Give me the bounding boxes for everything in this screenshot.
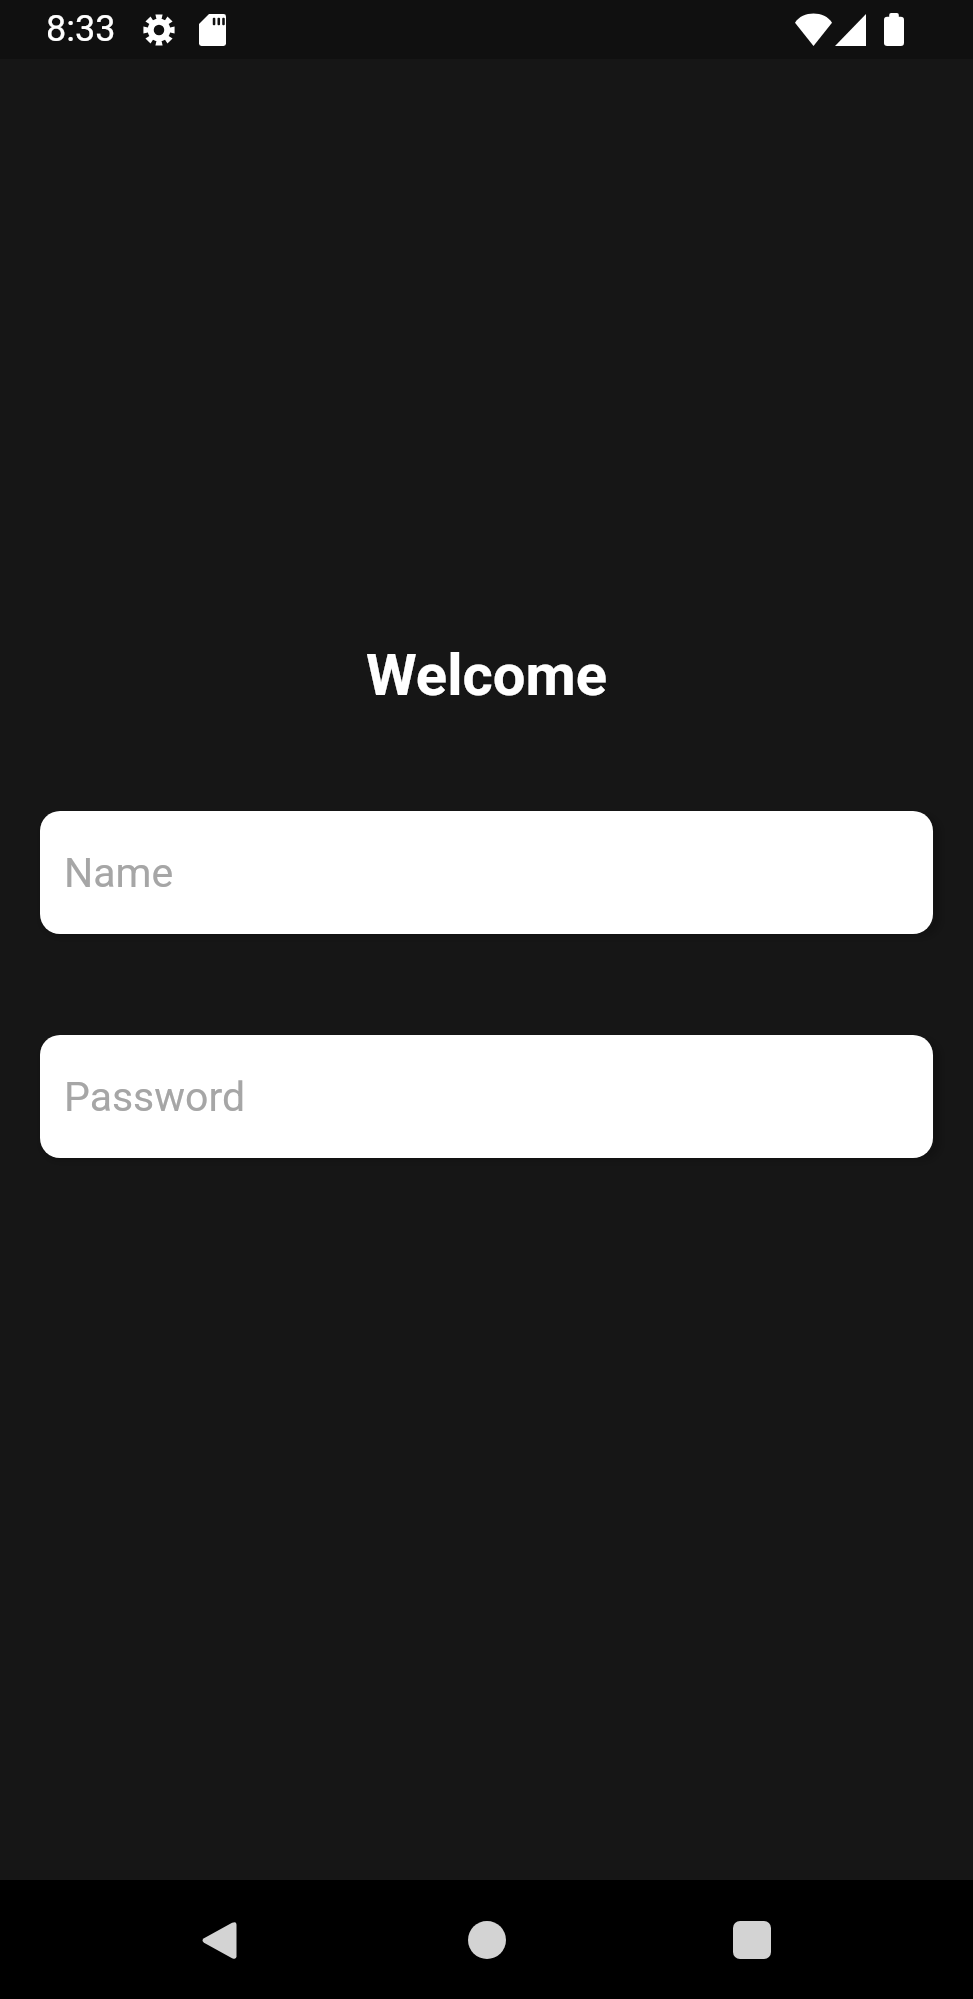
- button[interactable]: Name: [40, 811, 933, 934]
- staticText: Password: [64, 1073, 246, 1121]
- button[interactable]: Home: [437, 1890, 537, 1990]
- button[interactable]: Back: [169, 1890, 269, 1990]
- staticText: Welcome: [366, 641, 608, 709]
- button[interactable]: Recents: [702, 1890, 802, 1990]
- staticText: Name: [64, 849, 174, 897]
- staticText: 8:33: [46, 8, 116, 50]
- button[interactable]: Password: [40, 1035, 933, 1158]
